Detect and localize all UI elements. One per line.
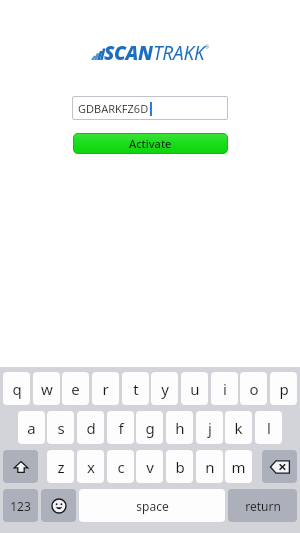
staticText: a <box>27 418 36 438</box>
button[interactable]: p <box>270 372 297 405</box>
staticText: d <box>86 418 96 438</box>
button[interactable]: e <box>62 372 89 405</box>
button[interactable]: return <box>228 489 297 522</box>
button[interactable]: d <box>77 411 104 444</box>
staticText: f <box>118 418 124 438</box>
button[interactable]: u <box>181 372 208 405</box>
staticText: ® <box>205 44 210 51</box>
button[interactable]: b <box>166 450 193 483</box>
button[interactable]: t <box>122 372 149 405</box>
button[interactable]: v <box>136 450 163 483</box>
button[interactable]: f <box>107 411 134 444</box>
staticText: x <box>87 457 95 477</box>
staticText: j <box>208 418 212 438</box>
staticText: s <box>57 418 65 438</box>
button[interactable]: a <box>18 411 45 444</box>
staticText: z <box>57 457 65 477</box>
staticText: t <box>133 379 139 399</box>
staticText: SCAN <box>104 40 153 66</box>
button[interactable]: Shift <box>3 450 38 483</box>
staticText: TRAKK <box>153 40 205 66</box>
staticText: r <box>102 379 109 399</box>
staticText: h <box>175 418 185 438</box>
button[interactable]: w <box>33 372 60 405</box>
button[interactable]: y <box>151 372 178 405</box>
staticText: u <box>190 379 200 399</box>
button[interactable]: n <box>196 450 223 483</box>
button[interactable]: i <box>211 372 238 405</box>
staticText: y <box>161 379 169 399</box>
staticText: n <box>205 457 215 477</box>
staticText: b <box>175 457 185 477</box>
staticText: o <box>249 379 259 399</box>
button[interactable]: space <box>79 489 225 522</box>
button[interactable]: k <box>225 411 252 444</box>
staticText: Activate <box>129 136 172 151</box>
staticText: k <box>234 418 243 438</box>
button[interactable]: g <box>136 411 163 444</box>
staticText: p <box>279 379 289 399</box>
button[interactable]: 123 <box>3 489 38 522</box>
staticText: w <box>41 379 53 399</box>
staticText: return <box>245 498 281 514</box>
staticText: GDBARKFZ6D <box>78 101 149 116</box>
staticText: c <box>117 457 125 477</box>
staticText: e <box>71 379 80 399</box>
staticText: space <box>136 498 169 514</box>
button[interactable]: o <box>240 372 267 405</box>
button[interactable]: q <box>3 372 30 405</box>
staticText: 123 <box>10 498 31 514</box>
button[interactable]: Emoji <box>41 489 76 522</box>
button[interactable]: h <box>166 411 193 444</box>
button[interactable]: GDBARKFZ6D <box>72 96 228 120</box>
staticText: g <box>145 418 155 438</box>
staticText: i <box>223 379 227 399</box>
button[interactable]: c <box>107 450 134 483</box>
staticText: m <box>231 457 246 477</box>
staticText: q <box>12 379 22 399</box>
button[interactable]: x <box>77 450 104 483</box>
button[interactable]: l <box>255 411 282 444</box>
button[interactable]: Activate <box>73 133 228 154</box>
staticText: v <box>146 457 154 477</box>
button[interactable]: j <box>196 411 223 444</box>
button[interactable]: z <box>47 450 74 483</box>
button[interactable]: r <box>92 372 119 405</box>
button[interactable]: m <box>225 450 252 483</box>
staticText: l <box>267 418 271 438</box>
button[interactable]: Backspace <box>262 450 297 483</box>
button[interactable]: s <box>47 411 74 444</box>
